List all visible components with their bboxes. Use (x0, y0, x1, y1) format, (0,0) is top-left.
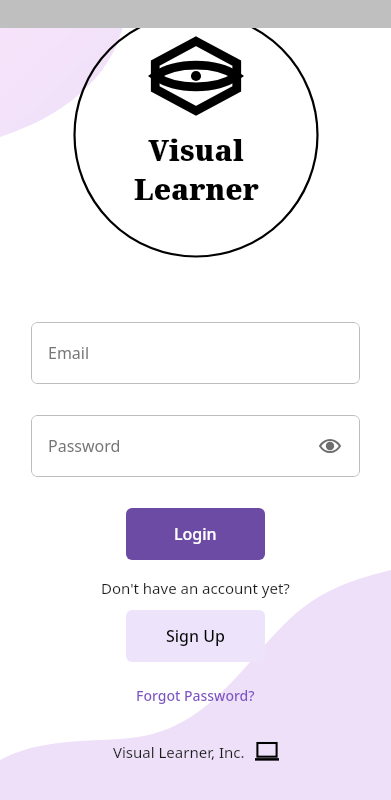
other: Desktop site (255, 743, 279, 761)
button[interactable]: Login (126, 508, 265, 560)
staticText: Learner (134, 169, 259, 208)
button[interactable]: Email (31, 322, 360, 384)
staticText: Sign Up (166, 625, 225, 647)
staticText: Email (48, 342, 90, 364)
staticText: Visual Learner, Inc. (113, 742, 245, 762)
staticText: Login (174, 523, 217, 545)
staticText: Visual (148, 130, 244, 169)
staticText: Don't have an account yet? (101, 578, 290, 598)
button[interactable]: Sign Up (126, 610, 265, 662)
staticText: Password (48, 435, 121, 457)
staticText: Forgot Password? (136, 686, 255, 705)
button[interactable]: Password (31, 415, 360, 477)
button[interactable]: Forgot Password? (132, 682, 259, 709)
button[interactable]: Show password (317, 433, 343, 459)
